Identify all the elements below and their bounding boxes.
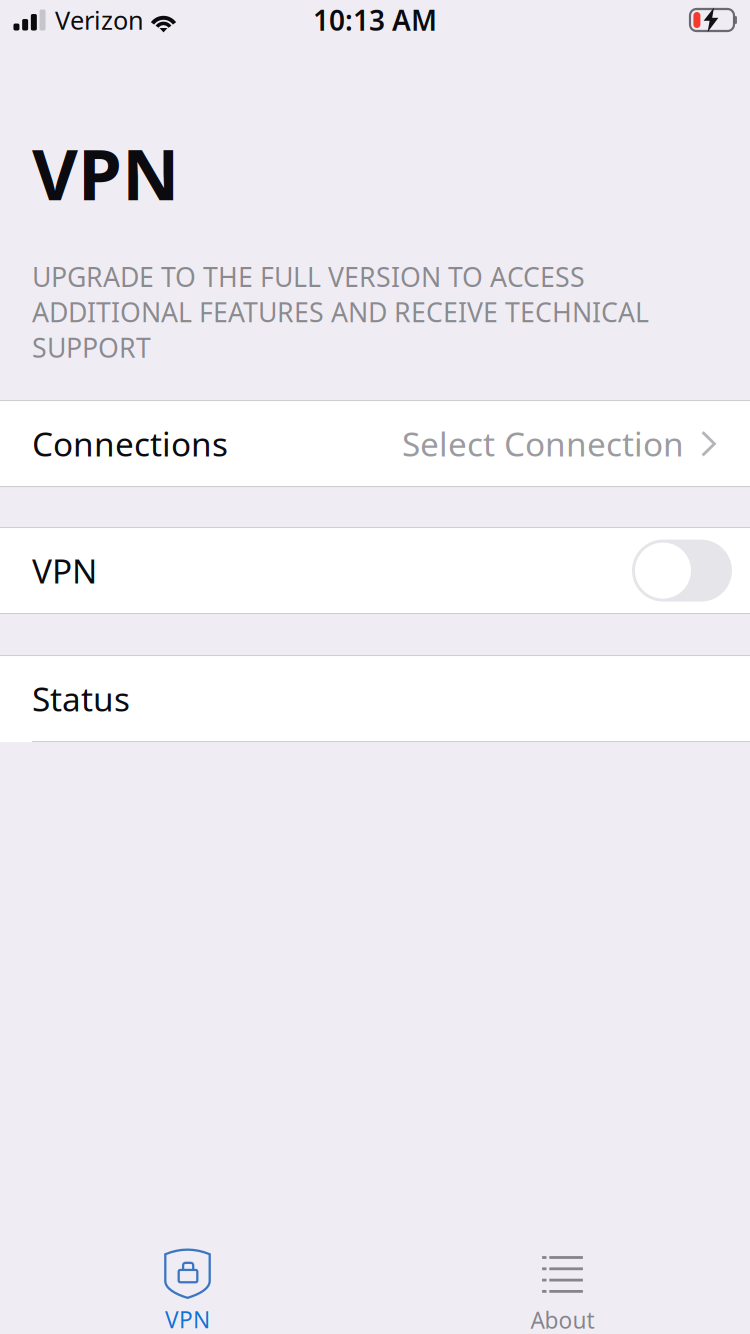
button[interactable]: About xyxy=(375,1231,750,1334)
staticText: ADDITIONAL FEATURES AND RECEIVE TECHNICA… xyxy=(32,294,649,330)
staticText: Select Connection xyxy=(402,421,684,466)
staticText: VPN xyxy=(32,548,97,593)
staticText: Verizon xyxy=(55,3,144,37)
staticText: Connections xyxy=(32,421,228,466)
button[interactable]: VPN on/off xyxy=(632,540,732,602)
staticText: VPN xyxy=(165,1304,210,1334)
staticText: VPN xyxy=(32,126,179,220)
button[interactable]: Connections xyxy=(0,401,750,486)
staticText: SUPPORT xyxy=(32,330,151,365)
staticText: 10:13 AM xyxy=(313,1,437,39)
staticText: About xyxy=(530,1305,594,1334)
button[interactable]: VPN xyxy=(0,1231,375,1334)
staticText: Status xyxy=(32,676,130,721)
staticText: UPGRADE TO THE FULL VERSION TO ACCESS xyxy=(32,259,585,294)
